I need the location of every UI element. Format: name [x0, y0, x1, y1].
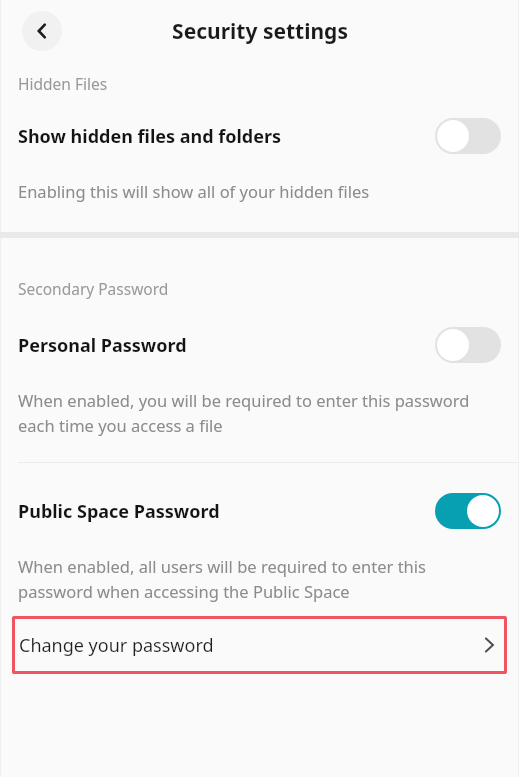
- staticText: Public Space Password: [18, 499, 220, 524]
- button[interactable]: Back: [22, 11, 62, 51]
- staticText: When enabled, you will be required to en…: [18, 389, 501, 436]
- staticText: Security settings: [172, 17, 348, 46]
- staticText: Show hidden files and folders: [18, 124, 282, 149]
- button[interactable]: Public Space Password: [0, 493, 519, 529]
- staticText: Enabling this will show all of your hidd…: [18, 180, 501, 202]
- staticText: Hidden Files: [18, 73, 501, 94]
- button[interactable]: Personal Password: [0, 327, 519, 363]
- staticText: When enabled, all users will be required…: [18, 555, 501, 602]
- staticText: Change your password: [19, 633, 214, 658]
- button[interactable]: Change your password: [12, 616, 507, 674]
- staticText: Secondary Password: [18, 278, 501, 299]
- staticText: Personal Password: [18, 333, 187, 358]
- button[interactable]: Show hidden files and folders: [0, 118, 519, 154]
